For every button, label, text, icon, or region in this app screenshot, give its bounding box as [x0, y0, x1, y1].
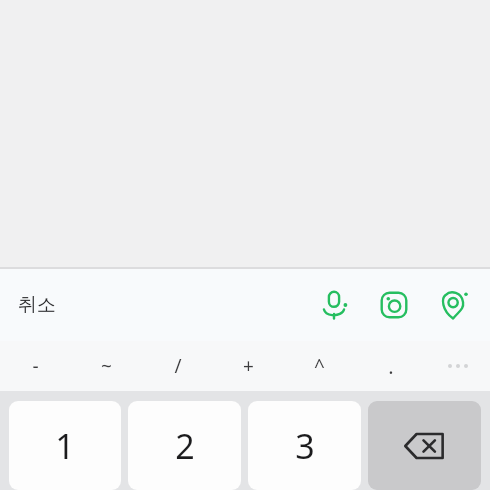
button[interactable]: ^: [284, 341, 355, 391]
button[interactable]: 1: [9, 401, 121, 490]
button[interactable]: .: [355, 341, 426, 391]
staticText: 취소: [18, 293, 56, 317]
button[interactable]: 취소: [8, 285, 66, 325]
button[interactable]: -: [0, 341, 71, 391]
button[interactable]: /: [142, 341, 213, 391]
staticText: ^: [314, 353, 325, 379]
button[interactable]: Scan text with camera: [372, 283, 416, 327]
button[interactable]: 3: [248, 401, 361, 490]
staticText: /: [174, 353, 182, 379]
button[interactable]: Voice input: [312, 283, 356, 327]
staticText: 3: [295, 423, 315, 469]
staticText: +: [243, 353, 254, 379]
button[interactable]: ~: [71, 341, 142, 391]
staticText: 2: [175, 423, 195, 469]
button[interactable]: Translate: [432, 283, 476, 327]
button[interactable]: +: [213, 341, 284, 391]
staticText: ~: [101, 353, 112, 379]
button[interactable]: 2: [128, 401, 241, 490]
staticText: -: [32, 353, 39, 379]
button[interactable]: More symbols: [426, 341, 490, 391]
staticText: .: [388, 353, 394, 380]
staticText: 1: [55, 423, 75, 469]
button[interactable]: Backspace: [368, 401, 481, 490]
